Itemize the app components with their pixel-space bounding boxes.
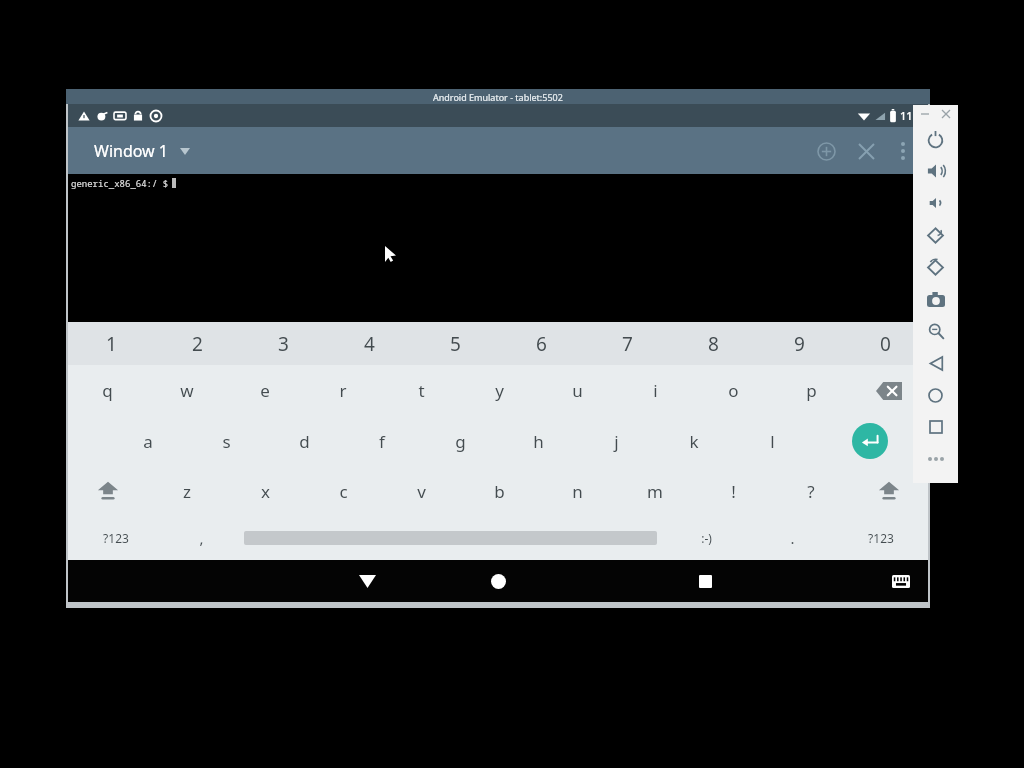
button[interactable]: Volume up xyxy=(913,155,958,187)
button[interactable]: Zoom xyxy=(913,315,958,347)
staticText: l xyxy=(770,430,775,453)
button[interactable]: w xyxy=(147,365,226,416)
staticText: 8 xyxy=(708,331,719,357)
button[interactable]: g xyxy=(421,416,499,466)
button[interactable]: Power xyxy=(913,123,958,155)
button[interactable]: q xyxy=(68,365,147,416)
button[interactable]: 0 xyxy=(842,322,928,365)
button[interactable]: y xyxy=(460,365,538,416)
button[interactable]: . xyxy=(751,516,833,560)
button[interactable]: Back xyxy=(345,560,389,602)
button[interactable]: Enter xyxy=(811,416,928,466)
button[interactable]: Rotate right xyxy=(913,251,958,283)
staticText: b xyxy=(494,480,505,503)
button[interactable]: 1 xyxy=(68,322,154,365)
button[interactable]: Rotate left xyxy=(913,219,958,251)
button[interactable]: ! xyxy=(694,466,772,516)
button[interactable]: h xyxy=(499,416,577,466)
button[interactable]: New window xyxy=(806,131,846,171)
staticText: 7 xyxy=(622,331,633,357)
staticText: o xyxy=(728,379,739,402)
button[interactable]: 2 xyxy=(154,322,240,365)
button[interactable]: p xyxy=(772,365,850,416)
button[interactable]: Minimize xyxy=(917,106,933,122)
staticText: u xyxy=(572,379,583,402)
button[interactable]: 4 xyxy=(326,322,412,365)
button[interactable]: t xyxy=(382,365,460,416)
staticText: . xyxy=(790,528,795,548)
button[interactable]: o xyxy=(694,365,772,416)
staticText: 4 xyxy=(364,331,375,357)
button[interactable]: j xyxy=(577,416,655,466)
button[interactable]: Close xyxy=(938,106,954,122)
staticText: p xyxy=(806,379,817,402)
button[interactable]: a xyxy=(108,416,187,466)
button[interactable]: e xyxy=(226,365,304,416)
staticText: ? xyxy=(807,480,815,503)
button[interactable]: 7 xyxy=(584,322,670,365)
button[interactable]: i xyxy=(616,365,694,416)
staticText: c xyxy=(339,480,348,503)
button[interactable]: ?123 xyxy=(68,516,163,560)
staticText: 9 xyxy=(794,331,805,357)
button[interactable]: z xyxy=(147,466,226,516)
button[interactable]: f xyxy=(343,416,421,466)
staticText: i xyxy=(653,379,658,402)
button[interactable]: 5 xyxy=(412,322,498,365)
staticText: :-) xyxy=(701,530,712,546)
button[interactable]: Overview xyxy=(913,411,958,443)
button[interactable]: Home xyxy=(913,379,958,411)
staticText: g xyxy=(455,430,466,453)
button[interactable]: 8 xyxy=(670,322,756,365)
button[interactable]: x xyxy=(226,466,304,516)
button[interactable]: Extended controls xyxy=(913,443,958,475)
staticText: m xyxy=(647,480,663,503)
staticText: 0 xyxy=(880,331,891,357)
staticText: 3 xyxy=(278,331,289,357)
staticText: j xyxy=(614,430,619,453)
button[interactable]: Close window xyxy=(846,131,886,171)
button[interactable]: 3 xyxy=(240,322,326,365)
button[interactable]: v xyxy=(382,466,460,516)
button[interactable]: u xyxy=(538,365,616,416)
button[interactable]: 6 xyxy=(498,322,584,365)
button[interactable]: c xyxy=(304,466,382,516)
button[interactable]: s xyxy=(187,416,265,466)
staticText: ! xyxy=(731,480,736,503)
button[interactable]: m xyxy=(616,466,694,516)
button[interactable]: Volume down xyxy=(913,187,958,219)
button[interactable]: b xyxy=(460,466,538,516)
button[interactable]: Home xyxy=(476,560,520,602)
staticText: k xyxy=(689,430,699,453)
button[interactable]: Window 1 xyxy=(90,136,194,166)
staticText: v xyxy=(417,480,426,503)
button[interactable]: Shift xyxy=(68,466,147,516)
staticText: r xyxy=(339,379,347,402)
button[interactable]: r xyxy=(304,365,382,416)
staticText: Android Emulator - tablet:5502 xyxy=(433,91,563,103)
staticText: 6 xyxy=(536,331,547,357)
button[interactable]: More options xyxy=(886,134,920,168)
button[interactable]: Switch keyboard xyxy=(884,564,918,598)
button[interactable]: d xyxy=(265,416,343,466)
button[interactable]: ? xyxy=(772,466,850,516)
staticText: s xyxy=(222,430,231,453)
button[interactable]: l xyxy=(733,416,811,466)
button[interactable]: Back xyxy=(913,347,958,379)
button[interactable]: Shift xyxy=(850,466,928,516)
button[interactable]: Recents xyxy=(683,560,727,602)
staticText: ?123 xyxy=(868,530,894,546)
staticText: n xyxy=(572,480,583,503)
staticText: generic_x86_64:/ $ xyxy=(71,177,169,189)
staticText: , xyxy=(199,528,204,548)
button[interactable]: :-) xyxy=(661,516,751,560)
button[interactable]: ?123 xyxy=(833,516,928,560)
button[interactable]: 9 xyxy=(756,322,842,365)
button[interactable]: , xyxy=(163,516,240,560)
staticText: e xyxy=(260,379,270,402)
button[interactable]: Screenshot xyxy=(913,283,958,315)
button[interactable]: k xyxy=(655,416,733,466)
button[interactable]: n xyxy=(538,466,616,516)
button[interactable]: Space xyxy=(240,516,661,560)
button[interactable]: Backspace xyxy=(850,365,928,416)
